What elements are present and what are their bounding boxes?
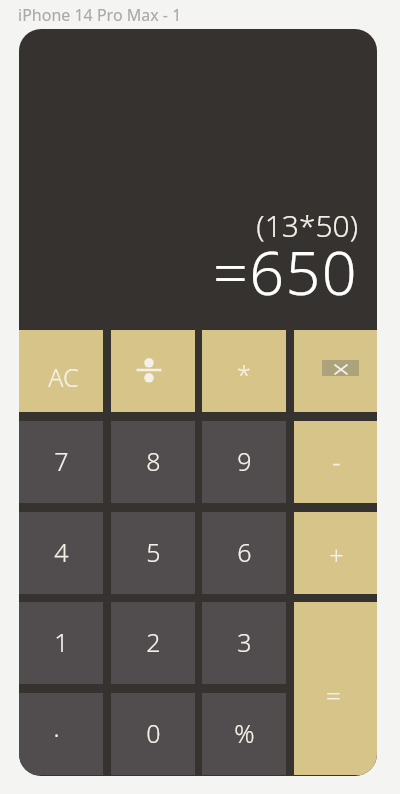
- button[interactable]: 4: [19, 512, 103, 594]
- staticText: 9: [237, 444, 252, 478]
- staticText: iPhone 14 Pro Max - 1: [18, 4, 182, 26]
- button[interactable]: 1: [19, 602, 103, 684]
- button[interactable]: .: [19, 693, 103, 775]
- staticText: -: [332, 444, 341, 479]
- staticText: 2: [146, 625, 161, 659]
- button[interactable]: Divide: [111, 330, 195, 412]
- button[interactable]: 3: [202, 602, 286, 684]
- button[interactable]: Delete: [294, 330, 377, 412]
- staticText: 0: [146, 716, 161, 750]
- staticText: *: [237, 357, 251, 391]
- staticText: 4: [54, 535, 69, 569]
- button[interactable]: Minus: [294, 421, 377, 503]
- staticText: AC: [48, 360, 79, 394]
- staticText: 5: [146, 535, 161, 569]
- button[interactable]: AC: [19, 330, 103, 412]
- button[interactable]: Plus: [294, 512, 377, 594]
- button[interactable]: 8: [111, 421, 195, 503]
- button[interactable]: Multiply: [202, 330, 286, 412]
- button[interactable]: 6: [202, 512, 286, 594]
- staticText: 6: [237, 535, 252, 569]
- button[interactable]: Equals: [294, 602, 377, 775]
- button[interactable]: 5: [111, 512, 195, 594]
- staticText: +: [329, 538, 344, 572]
- button[interactable]: 7: [19, 421, 103, 503]
- staticText: =650: [203, 230, 358, 313]
- button[interactable]: 0: [111, 693, 195, 775]
- button[interactable]: %: [202, 693, 286, 775]
- staticText: (13*50): [250, 205, 358, 246]
- staticText: .: [53, 710, 60, 744]
- staticText: 8: [146, 444, 161, 478]
- staticText: 1: [54, 625, 69, 659]
- staticText: %: [234, 716, 255, 750]
- staticText: 7: [54, 444, 69, 478]
- staticText: 3: [237, 625, 252, 659]
- button[interactable]: 9: [202, 421, 286, 503]
- button[interactable]: 2: [111, 602, 195, 684]
- staticText: =: [326, 677, 341, 712]
